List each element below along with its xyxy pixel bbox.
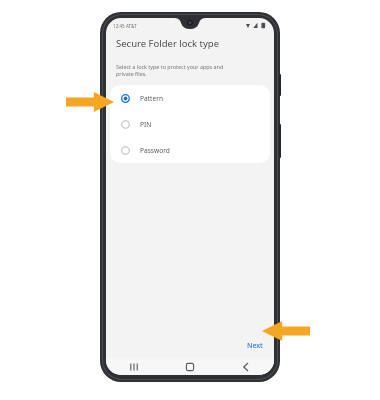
staticText: Secure Folder lock type [116, 37, 220, 50]
button[interactable]: Pattern [110, 85, 270, 111]
staticText: Select a lock type to protect your apps … [116, 63, 224, 78]
button[interactable]: PIN [110, 111, 270, 137]
staticText: Next [247, 341, 263, 351]
staticText: Password [140, 146, 170, 155]
button[interactable]: Back [218, 358, 274, 375]
button[interactable]: Password [110, 137, 270, 163]
button[interactable]: Recents [106, 358, 162, 375]
staticText: PIN [140, 120, 152, 129]
button[interactable]: Home [162, 358, 218, 375]
staticText: 12:45 AT&T [113, 23, 137, 29]
button[interactable]: Next [243, 339, 267, 353]
staticText: Pattern [140, 94, 163, 103]
